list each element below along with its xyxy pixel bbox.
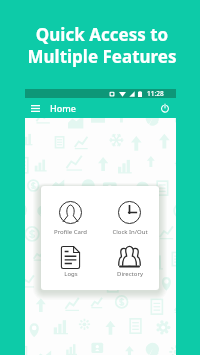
button[interactable]: Clock In/Out bbox=[100, 201, 159, 236]
staticText: Multiple Features bbox=[2, 45, 200, 68]
button[interactable]: Profile Card bbox=[41, 201, 100, 236]
button[interactable]: Open navigation menu bbox=[28, 101, 42, 115]
staticText: Home bbox=[50, 102, 76, 114]
staticText: Quick Access to bbox=[2, 23, 200, 46]
staticText: Clock In/Out bbox=[112, 228, 148, 236]
staticText: 11:28 bbox=[147, 89, 164, 98]
button[interactable]: Directory bbox=[100, 246, 159, 278]
button[interactable]: Power / sign out bbox=[158, 101, 172, 115]
staticText: Directory bbox=[117, 270, 143, 278]
staticText: Profile Card bbox=[54, 228, 87, 236]
staticText: Logs bbox=[64, 270, 78, 278]
button[interactable]: Logs bbox=[41, 246, 100, 278]
